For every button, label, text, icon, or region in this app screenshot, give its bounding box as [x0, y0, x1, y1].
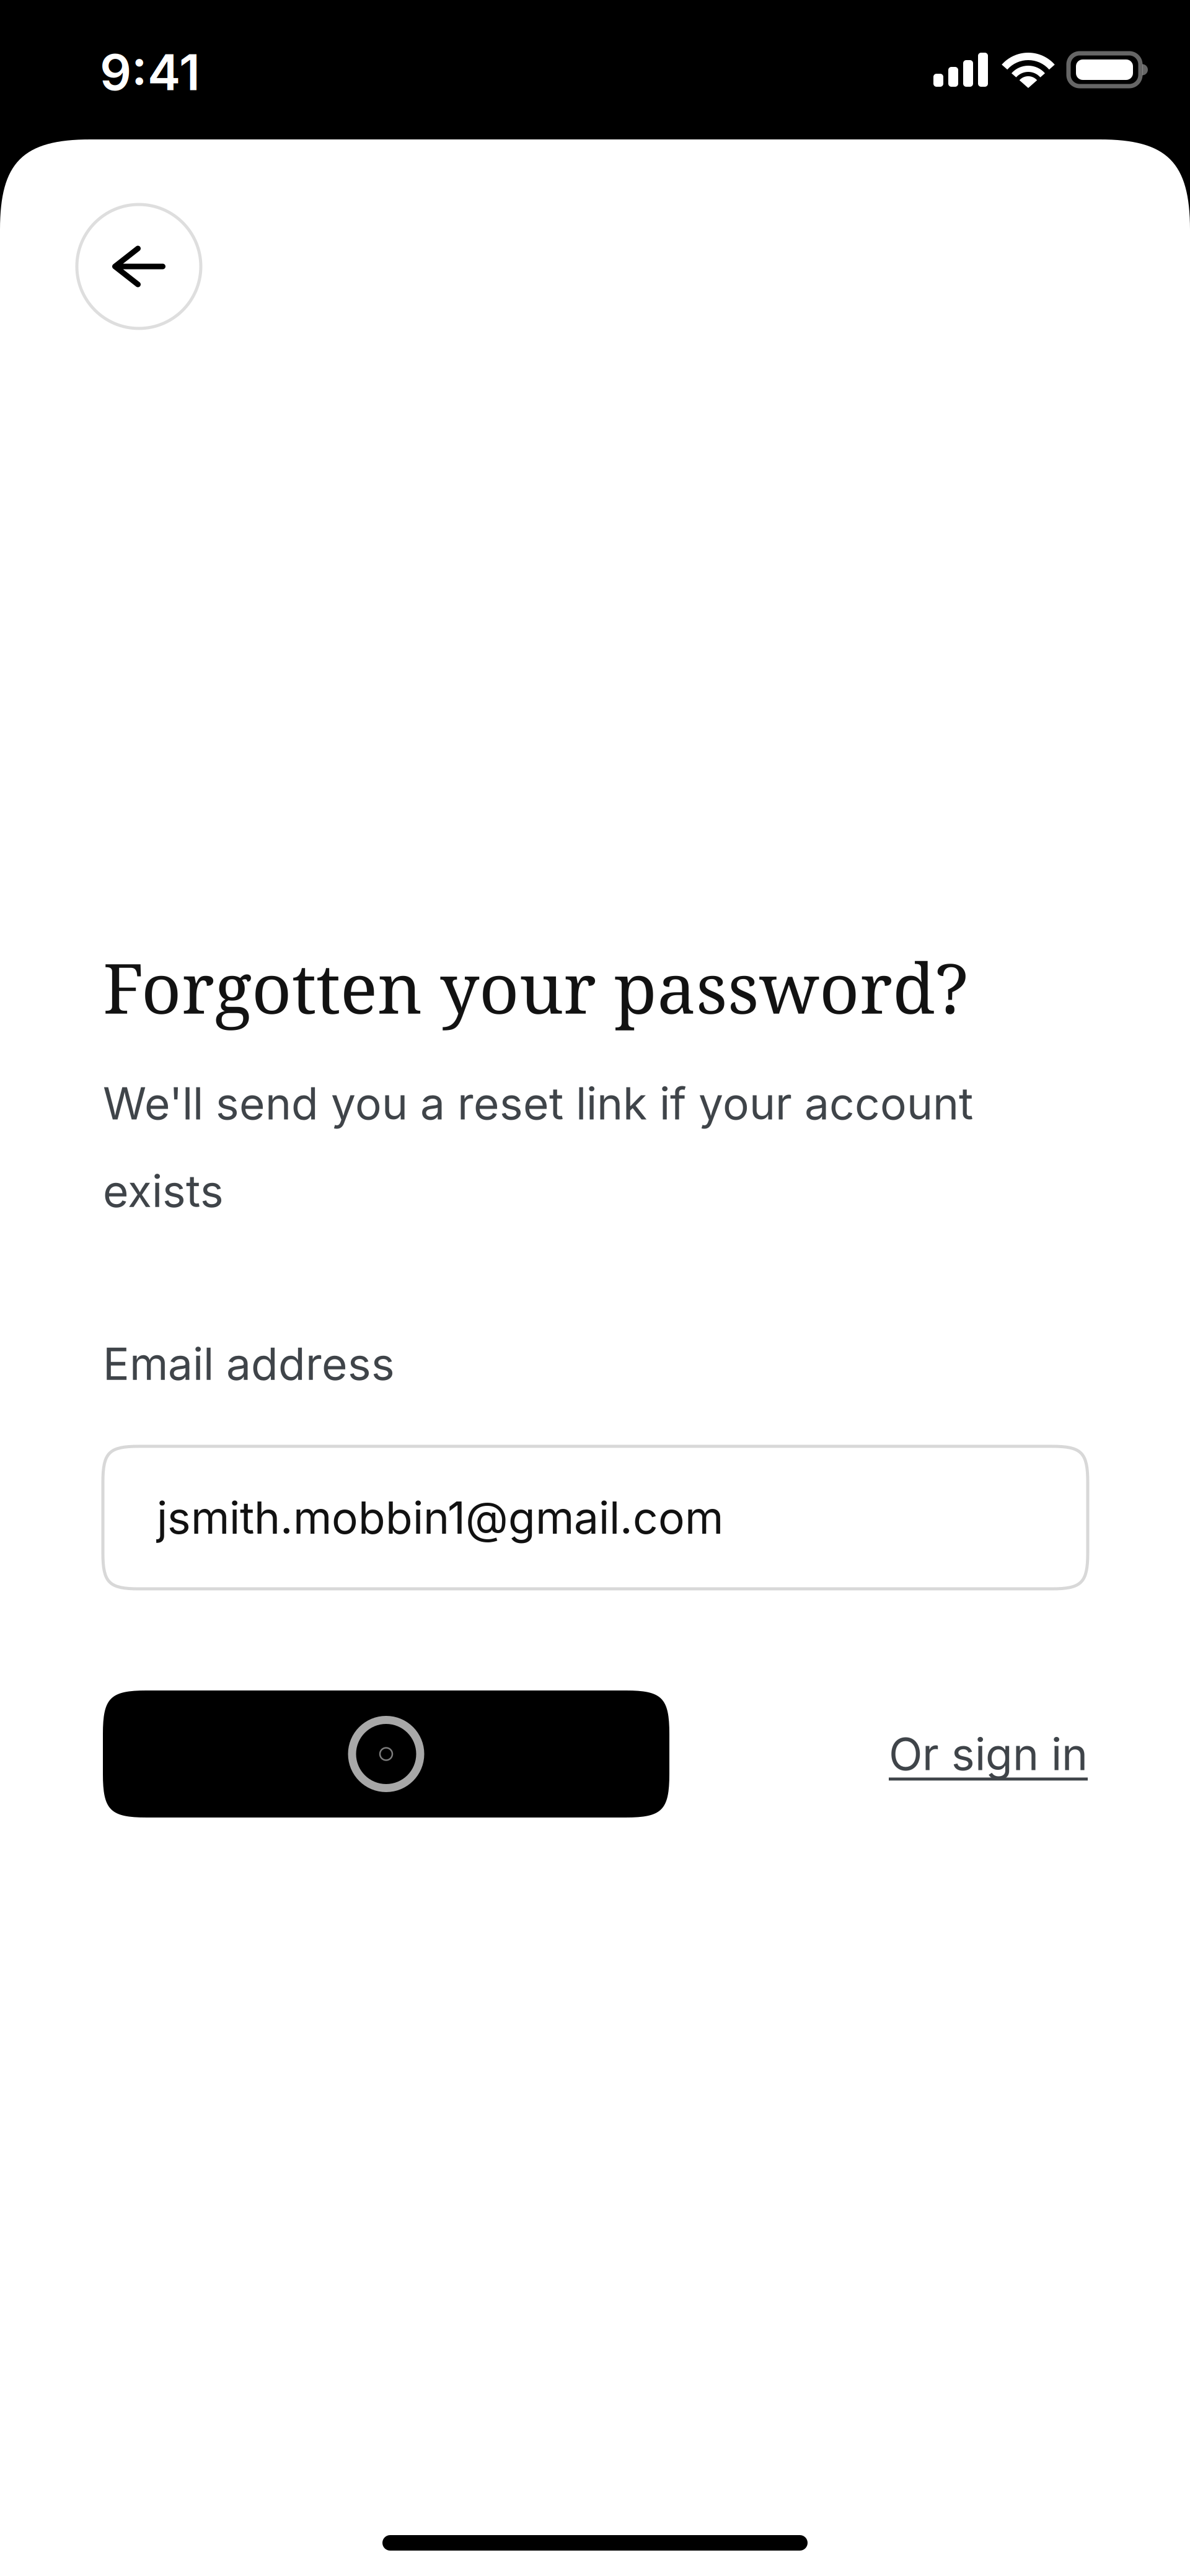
button[interactable]: jsmith.mobbin1@gmail.com	[103, 1446, 1088, 1589]
staticText: Or sign in	[889, 1727, 1088, 1781]
staticText: Forgotten your password?	[103, 939, 968, 1034]
button[interactable]: Back	[77, 204, 201, 328]
staticText: jsmith.mobbin1@gmail.com	[157, 1491, 723, 1544]
button[interactable]: Send reset link	[103, 1690, 669, 1818]
staticText: We'll send you a reset link if your acco…	[103, 1077, 973, 1218]
button[interactable]: Or sign in	[889, 1727, 1088, 1781]
staticText: 9:41	[100, 42, 200, 102]
staticText: Email address	[103, 1337, 395, 1390]
